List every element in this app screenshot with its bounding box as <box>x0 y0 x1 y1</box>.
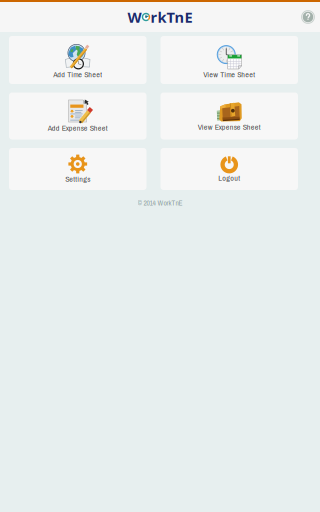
staticText: Add Expense Sheet <box>48 122 108 133</box>
staticText: Add Time Sheet <box>53 69 102 80</box>
staticText: Logout <box>218 172 240 183</box>
button[interactable]: View Time Sheet <box>160 36 298 84</box>
button[interactable]: View Expense Sheet <box>160 92 298 139</box>
staticText: © 2014 WorkTnE <box>137 198 182 208</box>
button[interactable]: Logout <box>160 148 298 190</box>
staticText: rkTnE <box>150 7 192 27</box>
staticText: View Time Sheet <box>203 69 255 80</box>
button[interactable]: Add Time Sheet <box>9 36 146 84</box>
button[interactable]: Settings <box>9 148 146 190</box>
button[interactable]: Add Expense Sheet <box>9 92 146 139</box>
button[interactable]: Help <box>298 7 318 27</box>
staticText: W <box>127 7 141 27</box>
staticText: View Expense Sheet <box>198 121 261 132</box>
staticText: Settings <box>65 173 90 184</box>
